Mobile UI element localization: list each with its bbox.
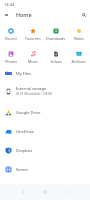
staticText: 14:44 bbox=[4, 2, 15, 7]
button[interactable]: Dropbox bbox=[0, 141, 90, 160]
staticText: My Files bbox=[16, 71, 32, 76]
button[interactable]: Back bbox=[17, 184, 29, 200]
button[interactable]: Home bbox=[39, 184, 51, 200]
staticText: Music bbox=[28, 59, 38, 64]
staticText: Dropbox bbox=[16, 148, 33, 153]
staticText: Photos bbox=[5, 59, 17, 64]
staticText: Google Drive bbox=[16, 110, 41, 115]
button[interactable]: Videos bbox=[44, 43, 67, 64]
button[interactable]: Favorites bbox=[22, 20, 44, 43]
staticText: Home bbox=[16, 11, 32, 18]
staticText: Internal storage bbox=[16, 86, 47, 91]
staticText: Notes bbox=[74, 36, 84, 41]
button[interactable]: Downloads bbox=[44, 20, 67, 43]
button[interactable]: My Files bbox=[0, 64, 90, 82]
button[interactable]: Menu bbox=[0, 9, 13, 20]
button[interactable]: Recent bbox=[0, 20, 22, 43]
staticText: Recent bbox=[5, 36, 17, 41]
button[interactable]: Internal storage bbox=[0, 82, 90, 100]
staticText: Server bbox=[16, 167, 29, 172]
button[interactable]: Server bbox=[0, 160, 90, 178]
button[interactable]: Notes bbox=[67, 20, 90, 43]
staticText: Downloads bbox=[46, 36, 65, 41]
button[interactable]: Google Drive bbox=[0, 102, 90, 122]
button[interactable]: Music bbox=[22, 43, 44, 64]
staticText: Archives bbox=[71, 59, 86, 64]
button[interactable]: Archives bbox=[67, 43, 90, 64]
staticText: Favorites bbox=[25, 36, 41, 41]
staticText: 47.23 GB available / 128 GB bbox=[16, 92, 52, 96]
button[interactable]: Search bbox=[77, 9, 90, 20]
staticText: OneDrive bbox=[16, 129, 34, 134]
button[interactable]: Photos bbox=[0, 43, 22, 64]
button[interactable]: OneDrive bbox=[0, 122, 90, 141]
staticText: Videos bbox=[50, 59, 62, 64]
